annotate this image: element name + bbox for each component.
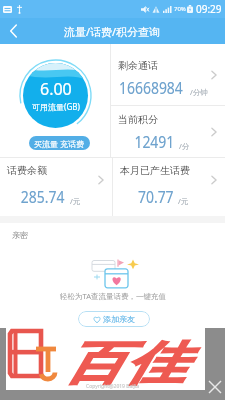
staticText: /分钟 [190,87,208,97]
staticText: 流量/话费/积分查询 [64,24,161,39]
staticText: 70% [174,5,186,13]
staticText: 70.77 [138,185,174,208]
staticText: 添加亲友 [103,314,135,324]
button[interactable]: 剩余通话 [111,44,225,105]
staticText: 可用流量(GB) [32,101,80,112]
staticText: 16668984 [119,76,183,99]
staticText: 百佳 [63,335,185,393]
button[interactable]: Back [0,18,26,44]
staticText: 本月已产生话费 [120,164,190,177]
staticText: 285.74 [21,185,65,208]
button[interactable]: 当前积分 [111,106,225,157]
staticText: 买流量 充话费 [34,138,85,149]
button[interactable]: 本月已产生话费 [113,158,225,202]
staticText: Copyright@2019 BaiJia [86,383,140,390]
staticText: 当前积分 [118,113,158,126]
staticText: /元 [70,196,81,206]
staticText: 轻松为TA查流量话费，一键充值 [60,291,166,301]
button[interactable]: 话费余额 [0,158,112,202]
staticText: 6.00 [40,78,72,100]
staticText: 12491 [134,130,175,153]
button[interactable]: 添加亲友 [78,311,150,327]
staticText: 话费余额 [7,164,47,177]
staticText: /分 [179,141,190,151]
staticText: /元 [178,196,189,206]
button[interactable]: 买流量 充话费 [29,136,90,150]
button[interactable]: Close ad [205,373,225,400]
staticText: 亲密 [12,230,28,240]
staticText: 09:29 [196,2,222,16]
staticText: 剩余通话 [118,59,158,72]
